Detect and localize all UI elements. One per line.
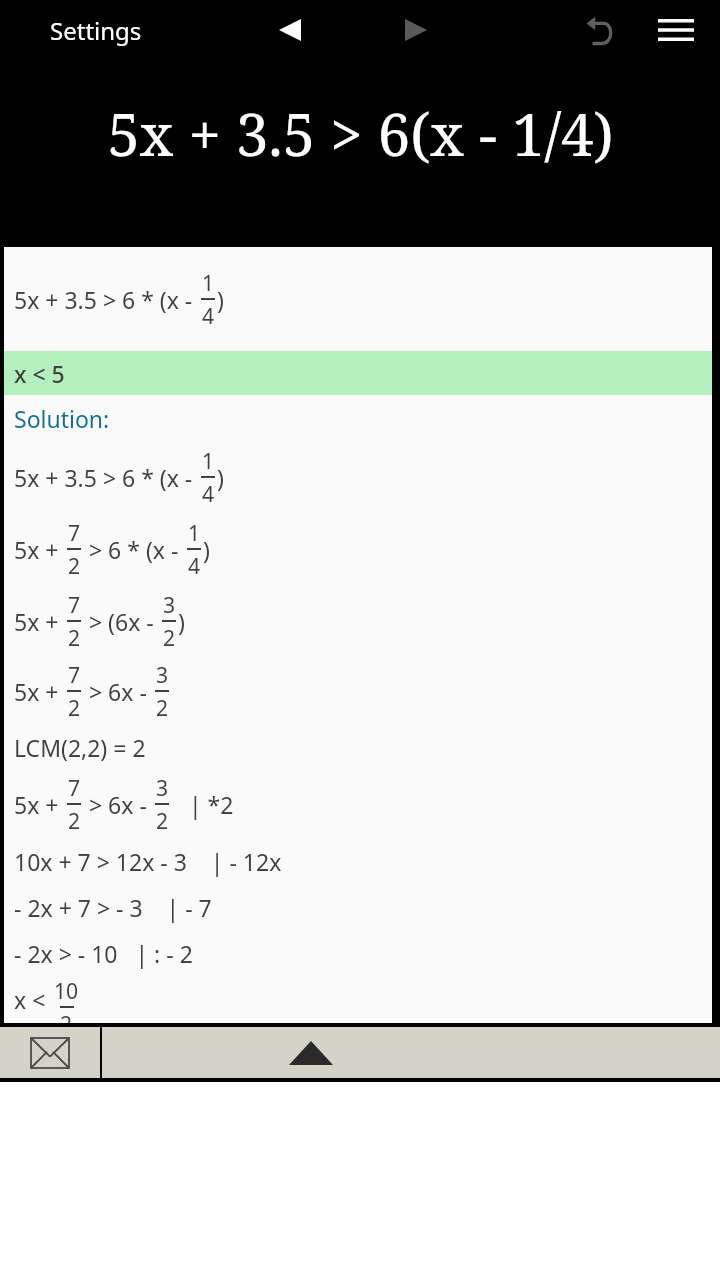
staticText: x < xyxy=(14,984,52,1015)
staticText: 1 xyxy=(202,446,215,475)
staticText: Settings xyxy=(50,14,142,47)
button[interactable]: LCM(2,2) = 2 xyxy=(4,725,712,770)
button[interactable]: Send email xyxy=(0,1027,100,1078)
button[interactable]: 5x + xyxy=(4,585,712,657)
button[interactable]: 5x + 3.5 > 6 * (x - xyxy=(4,247,712,351)
button[interactable]: 5x + xyxy=(4,657,712,725)
staticText: 7 xyxy=(68,518,81,547)
staticText: - 2x > - 10 | : - 2 xyxy=(14,938,193,969)
button[interactable]: Next xyxy=(388,2,444,58)
staticText: 10 xyxy=(54,976,79,1005)
staticText: - 2x + 7 > - 3 | - 7 xyxy=(14,892,212,923)
staticText: ) xyxy=(217,284,224,315)
staticText: 4 xyxy=(202,479,215,508)
staticText: 3 xyxy=(156,660,169,689)
button[interactable]: - 2x + 7 > - 3 | - 7 xyxy=(4,884,712,930)
button[interactable]: x < 5 xyxy=(4,351,712,395)
staticText: > (6x - xyxy=(83,606,160,637)
staticText: 5x + 3.5 > 6 * (x - xyxy=(14,462,199,493)
staticText: 5x + 3.5 > 6 * (x - xyxy=(14,284,199,315)
staticText: 1 xyxy=(188,518,201,547)
staticText: 7 xyxy=(68,660,81,689)
button[interactable]: Previous xyxy=(262,2,318,58)
button[interactable]: 5x + xyxy=(4,770,712,838)
staticText: 2 xyxy=(68,623,81,652)
button[interactable]: 5x + 3.5 > 6 * (x - xyxy=(4,441,712,513)
staticText: LCM(2,2) = 2 xyxy=(14,732,146,763)
button[interactable]: 5x + xyxy=(4,513,712,585)
staticText: > 6x - xyxy=(83,789,153,820)
staticText: 5x + xyxy=(14,534,65,565)
button[interactable]: Solution: xyxy=(4,395,712,441)
staticText: 3 xyxy=(163,590,176,619)
staticText: 1 xyxy=(202,268,215,297)
staticText: ) xyxy=(178,606,185,637)
staticText: 2 xyxy=(156,693,169,722)
staticText: ) xyxy=(217,462,224,493)
staticText: 5x + xyxy=(14,789,65,820)
staticText: 7 xyxy=(68,773,81,802)
staticText: 2 xyxy=(68,806,81,835)
button[interactable]: Menu xyxy=(648,2,704,58)
staticText: | *2 xyxy=(171,789,234,820)
button[interactable]: 10x + 7 > 12x - 3 | - 12x xyxy=(4,838,712,884)
staticText: 5x + 3.5 > 6(x - 1/4) xyxy=(107,94,614,173)
button[interactable]: - 2x > - 10 | : - 2 xyxy=(4,930,712,976)
staticText: 2 xyxy=(156,806,169,835)
staticText: 7 xyxy=(68,590,81,619)
staticText: > 6 * (x - xyxy=(83,534,185,565)
staticText: 5x + xyxy=(14,606,65,637)
staticText: 2 xyxy=(68,551,81,580)
staticText: ) xyxy=(203,534,210,565)
staticText: 10x + 7 > 12x - 3 | - 12x xyxy=(14,846,282,877)
staticText: 2 xyxy=(163,623,176,652)
staticText: 4 xyxy=(188,551,201,580)
button[interactable]: Undo xyxy=(572,2,628,58)
staticText: 2 xyxy=(68,693,81,722)
staticText: 4 xyxy=(202,301,215,330)
staticText: x < 5 xyxy=(14,358,65,389)
button[interactable]: x < xyxy=(4,976,712,1023)
button[interactable]: Scroll up xyxy=(102,1027,720,1078)
staticText: > 6x - xyxy=(83,676,153,707)
staticText: 5x + xyxy=(14,676,65,707)
staticText: Solution: xyxy=(14,403,110,434)
staticText: 2 xyxy=(60,1009,73,1023)
staticText: 3 xyxy=(156,773,169,802)
button[interactable]: Settings xyxy=(40,8,152,53)
